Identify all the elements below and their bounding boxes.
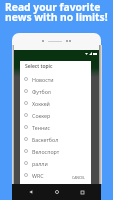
button[interactable]: CANCEL — [72, 175, 91, 185]
staticText: Select topic — [25, 63, 53, 70]
button[interactable]: Футбол — [20, 85, 91, 97]
staticText: CANCEL — [72, 175, 85, 180]
button[interactable]: Новости — [20, 73, 91, 85]
staticText: Футбол — [32, 88, 51, 95]
staticText: Read your favorite news with no limits! — [5, 0, 108, 24]
button[interactable]: WRC — [20, 169, 91, 181]
staticText: Теннис — [32, 124, 51, 131]
button[interactable]: Баскетбол — [20, 133, 91, 145]
staticText: WRC — [32, 172, 44, 179]
button[interactable]: Home — [51, 186, 63, 198]
staticText: Соккер — [32, 112, 51, 119]
staticText: Баскетбол — [32, 136, 59, 143]
staticText: Велоспорт — [32, 148, 60, 155]
button[interactable]: Велоспорт — [20, 145, 91, 157]
staticText: Новости — [32, 76, 54, 83]
button[interactable]: Recent apps — [76, 186, 88, 198]
button[interactable]: ралли — [20, 157, 91, 169]
button[interactable]: Back — [25, 186, 37, 198]
staticText: ралли — [32, 160, 48, 167]
staticText: Хоккей — [32, 100, 50, 107]
button[interactable]: Теннис — [20, 121, 91, 133]
button[interactable]: Хоккей — [20, 97, 91, 109]
button[interactable]: Соккер — [20, 109, 91, 121]
